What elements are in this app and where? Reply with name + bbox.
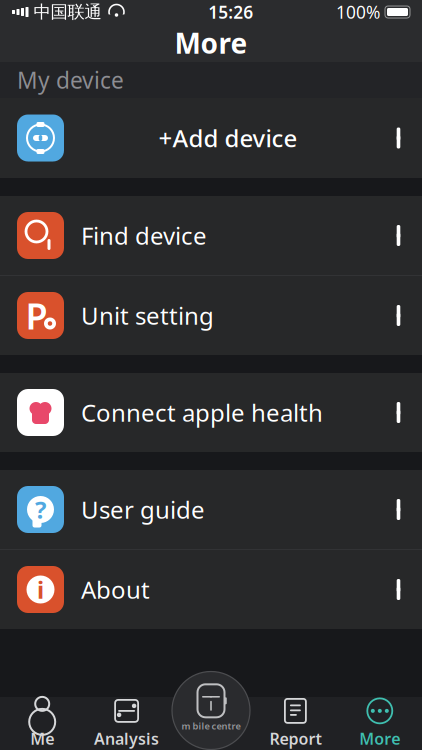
staticText: Connect apple health xyxy=(81,397,323,428)
staticText: About xyxy=(81,574,150,605)
staticText: Find device xyxy=(81,220,207,251)
button[interactable]: More xyxy=(338,697,422,750)
staticText: ? xyxy=(35,494,46,525)
staticText: Analysis xyxy=(94,728,159,749)
staticText: +Add device xyxy=(158,122,297,154)
staticText: Report xyxy=(269,728,321,749)
button[interactable]: Analysis xyxy=(84,697,169,750)
button[interactable]: i xyxy=(0,550,422,629)
staticText: P xyxy=(25,292,47,339)
staticText: User guide xyxy=(81,494,205,525)
staticText: 中国联通 xyxy=(33,1,101,23)
staticText: 15:26 xyxy=(208,0,253,23)
button[interactable]: Mobile centre xyxy=(171,670,251,750)
staticText: More xyxy=(174,24,247,62)
button[interactable]: Find device xyxy=(0,196,422,275)
button[interactable]: Me xyxy=(0,697,84,750)
staticText: Me xyxy=(30,728,54,749)
staticText: Unit setting xyxy=(81,300,214,331)
button[interactable]: Report xyxy=(253,697,338,750)
button[interactable]: +Add device xyxy=(0,98,422,178)
staticText: More xyxy=(359,728,400,749)
button[interactable]: Connect apple health xyxy=(0,373,422,452)
staticText: 100% xyxy=(336,0,380,23)
button[interactable]: ? xyxy=(0,470,422,549)
button[interactable]: P xyxy=(0,276,422,355)
staticText: i xyxy=(37,574,44,605)
staticText: m bile centre xyxy=(181,720,240,732)
staticText: My device xyxy=(17,65,124,95)
